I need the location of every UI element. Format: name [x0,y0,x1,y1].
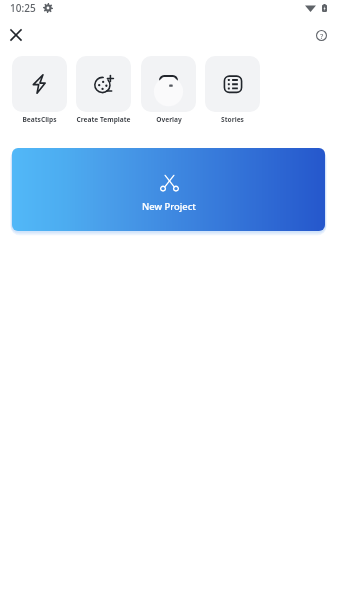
staticText: Overlay [156,115,182,124]
button[interactable]: Overlay [141,56,196,124]
staticText: ? [320,31,324,41]
staticText: 10:25 [10,1,36,15]
button[interactable]: New Project [12,148,325,231]
button[interactable]: Stories [205,56,260,124]
staticText: Create Template [76,115,131,124]
button[interactable]: BeatsClips [12,56,67,124]
button[interactable]: Create Template [76,56,131,124]
button[interactable]: Help [308,22,334,48]
button[interactable]: Close [2,21,30,49]
staticText: Stories [221,115,244,124]
staticText: BeatsClips [22,115,57,124]
staticText: New Project [142,200,196,213]
